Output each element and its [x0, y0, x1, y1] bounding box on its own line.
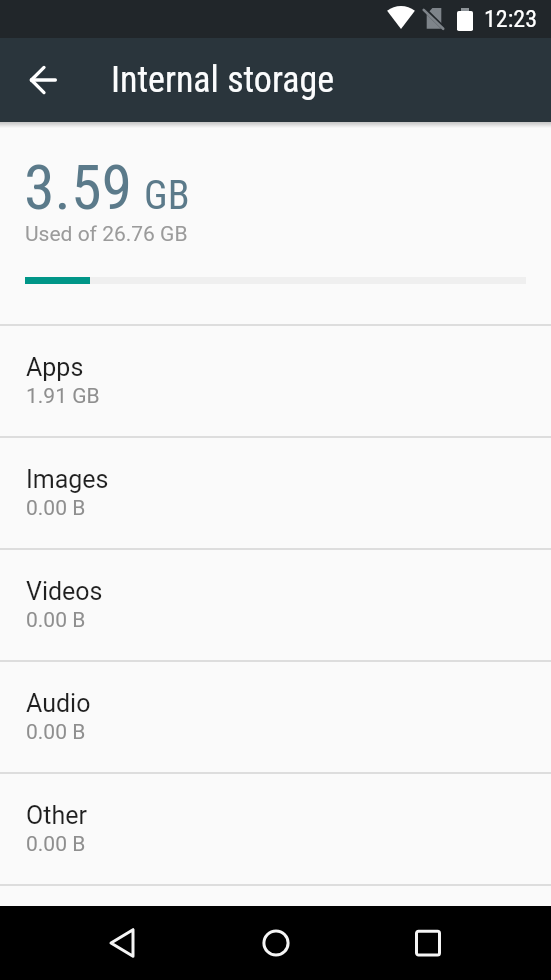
staticText: 0.00 B [26, 608, 86, 633]
button[interactable]: Videos [0, 550, 551, 660]
staticText: GB [144, 172, 190, 219]
staticText: 3.59 [24, 151, 133, 224]
staticText: 1.91 GB [26, 384, 100, 409]
button[interactable]: Images [0, 438, 551, 548]
button[interactable]: Other [0, 774, 551, 884]
staticText: Used of 26.76 GB [25, 222, 188, 247]
staticText: Internal storage [111, 59, 335, 101]
staticText: Audio [26, 689, 91, 718]
button[interactable] [98, 919, 146, 967]
button[interactable]: Apps [0, 326, 551, 436]
staticText: 0.00 B [26, 496, 86, 521]
staticText: Apps [26, 353, 84, 382]
staticText: Images [26, 465, 109, 494]
staticText: Other [26, 801, 87, 830]
staticText: Videos [26, 577, 103, 606]
button[interactable] [252, 919, 300, 967]
staticText: 0.00 B [26, 832, 86, 857]
button[interactable] [404, 919, 452, 967]
button[interactable] [19, 56, 67, 104]
staticText: 12:23 [484, 5, 537, 33]
staticText: 0.00 B [26, 720, 86, 745]
button[interactable]: Audio [0, 662, 551, 772]
